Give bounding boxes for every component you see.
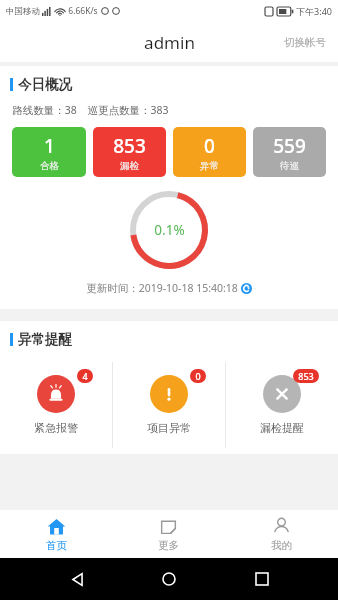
- button[interactable]: 4: [0, 360, 112, 450]
- staticText: 0.1%: [154, 221, 185, 239]
- staticText: 合格: [40, 160, 59, 172]
- staticText: 6.66K/s: [68, 5, 98, 17]
- staticText: 漏检: [120, 160, 139, 172]
- button[interactable]: Refresh: [241, 283, 252, 294]
- button[interactable]: 0: [113, 360, 225, 450]
- staticText: 853: [298, 370, 314, 382]
- staticText: 异常: [200, 160, 219, 172]
- staticText: 1: [44, 133, 55, 159]
- staticText: 0: [195, 370, 201, 382]
- staticText: 项目异常: [147, 421, 191, 435]
- button[interactable]: 853: [226, 360, 338, 450]
- staticText: 559: [273, 133, 306, 159]
- button[interactable]: Back: [61, 563, 93, 595]
- staticText: 更新时间：2019-10-18 15:40:18: [86, 281, 238, 295]
- staticText: 首页: [46, 539, 67, 552]
- staticText: 异常提醒: [18, 331, 72, 348]
- button[interactable]: 切换帐号: [272, 28, 338, 57]
- staticText: 853: [113, 133, 146, 159]
- staticText: 中国移动: [6, 6, 40, 17]
- staticText: 下午3:40: [296, 5, 332, 17]
- button[interactable]: 我的: [225, 510, 338, 558]
- staticText: 切换帐号: [284, 36, 326, 49]
- button[interactable]: 559: [253, 127, 326, 177]
- button[interactable]: 853: [93, 127, 166, 177]
- staticText: 0: [204, 133, 215, 159]
- staticText: 紧急报警: [34, 421, 78, 435]
- button[interactable]: Recents: [246, 563, 278, 595]
- button[interactable]: Home: [153, 563, 185, 595]
- staticText: 待巡: [280, 160, 299, 172]
- staticText: 更多: [158, 539, 179, 552]
- button[interactable]: 首页: [0, 510, 112, 558]
- button[interactable]: 0: [173, 127, 246, 177]
- staticText: 4: [82, 370, 88, 382]
- button[interactable]: 更多: [112, 510, 225, 558]
- staticText: 我的: [271, 539, 292, 552]
- staticText: 今日概况: [18, 76, 72, 93]
- button[interactable]: 1: [12, 127, 86, 177]
- staticText: admin: [144, 31, 195, 54]
- staticText: 巡更点数量：383: [87, 103, 169, 117]
- staticText: 漏检提醒: [260, 421, 304, 435]
- staticText: 路线数量：38: [12, 103, 77, 117]
